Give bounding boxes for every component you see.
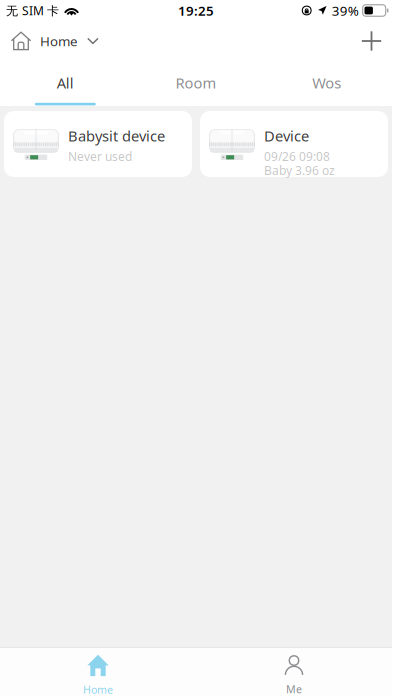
button[interactable]: Me bbox=[196, 648, 392, 696]
staticText: Room bbox=[175, 73, 216, 92]
staticText: Babysit device bbox=[68, 126, 165, 145]
staticText: Me bbox=[286, 682, 302, 696]
button[interactable]: All bbox=[0, 61, 131, 106]
staticText: 09/26 09:08 bbox=[264, 148, 330, 164]
staticText: 无 SIM 卡 bbox=[6, 2, 59, 18]
staticText: All bbox=[57, 73, 74, 92]
staticText: Wos bbox=[312, 73, 341, 92]
button[interactable]: Device bbox=[200, 111, 388, 177]
staticText: Baby 3.96 oz bbox=[264, 162, 335, 178]
button[interactable]: Wos bbox=[261, 61, 392, 106]
staticText: Device bbox=[264, 126, 309, 145]
staticText: 39% bbox=[332, 2, 359, 19]
button[interactable]: Babysit device bbox=[4, 111, 192, 177]
button[interactable]: Home bbox=[0, 21, 111, 61]
staticText: Home bbox=[83, 682, 113, 696]
staticText: 19:25 bbox=[178, 2, 214, 19]
button[interactable]: Add bbox=[349, 21, 392, 61]
button[interactable]: Home bbox=[0, 648, 196, 696]
button[interactable]: Room bbox=[131, 61, 261, 106]
staticText: Home bbox=[40, 32, 78, 50]
staticText: Never used bbox=[68, 148, 132, 164]
